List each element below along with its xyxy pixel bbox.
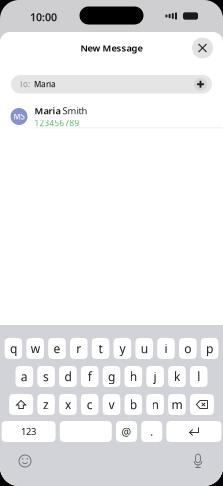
- button[interactable]: m: [168, 394, 186, 415]
- staticText: m: [171, 396, 182, 412]
- staticText: Smith: [60, 104, 87, 117]
- staticText: k: [174, 368, 180, 384]
- button[interactable]: r: [70, 338, 88, 359]
- button[interactable]: x: [59, 394, 77, 415]
- staticText: e: [53, 340, 60, 356]
- button[interactable]: 123: [2, 421, 56, 442]
- staticText: Maria: [34, 79, 56, 89]
- button[interactable]: .: [141, 421, 162, 442]
- button[interactable]: b: [124, 394, 142, 415]
- staticText: 10:00: [30, 10, 57, 24]
- staticText: n: [152, 396, 159, 412]
- staticText: g: [108, 368, 115, 384]
- button[interactable]: [190, 394, 214, 415]
- button[interactable]: g: [103, 366, 120, 387]
- button[interactable]: i: [157, 338, 175, 359]
- button[interactable]: u: [135, 338, 153, 359]
- staticText: New Message: [80, 42, 142, 54]
- staticText: a: [21, 368, 28, 384]
- button[interactable]: h: [124, 366, 142, 387]
- staticText: To:: [19, 79, 30, 89]
- button[interactable]: n: [146, 394, 164, 415]
- button[interactable]: e: [48, 338, 66, 359]
- staticText: r: [76, 340, 81, 356]
- button[interactable]: j: [146, 366, 164, 387]
- button[interactable]: [9, 394, 33, 415]
- staticText: t: [99, 340, 103, 356]
- staticText: p: [206, 340, 213, 356]
- staticText: s: [43, 368, 49, 384]
- button[interactable]: v: [103, 394, 120, 415]
- button[interactable]: t: [92, 338, 109, 359]
- staticText: f: [88, 368, 92, 384]
- staticText: x: [65, 396, 71, 412]
- button[interactable]: k: [168, 366, 186, 387]
- staticText: h: [130, 368, 137, 384]
- staticText: d: [64, 368, 71, 384]
- button[interactable]: p: [201, 338, 218, 359]
- button[interactable]: w: [26, 338, 44, 359]
- staticText: q: [10, 340, 17, 356]
- staticText: i: [164, 340, 167, 356]
- button[interactable]: c: [81, 394, 98, 415]
- staticText: b: [130, 396, 137, 412]
- button[interactable]: a: [15, 366, 33, 387]
- button[interactable]: Close: [192, 37, 213, 58]
- button[interactable]: @: [116, 421, 137, 442]
- button[interactable]: Add contact: [194, 78, 207, 91]
- button[interactable]: o: [179, 338, 197, 359]
- button[interactable]: [166, 421, 221, 442]
- staticText: w: [31, 340, 40, 356]
- staticText: l: [197, 368, 200, 384]
- button[interactable]: f: [81, 366, 98, 387]
- button[interactable]: q: [5, 338, 22, 359]
- button[interactable]: l: [190, 366, 207, 387]
- button[interactable]: Dictate: [185, 449, 211, 473]
- staticText: j: [154, 368, 157, 384]
- staticText: 123456789: [34, 118, 79, 128]
- staticText: .: [150, 424, 153, 439]
- staticText: @: [121, 424, 131, 439]
- button[interactable]: Emoji: [12, 449, 38, 473]
- button[interactable]: [60, 421, 112, 442]
- button[interactable]: MS: [0, 105, 223, 128]
- button[interactable]: y: [114, 338, 131, 359]
- staticText: 123: [21, 425, 36, 438]
- staticText: MS: [13, 111, 24, 122]
- staticText: y: [119, 340, 125, 356]
- staticText: v: [108, 396, 114, 412]
- staticText: z: [43, 396, 49, 412]
- staticText: Maria: [34, 104, 60, 117]
- staticText: c: [87, 396, 93, 412]
- button[interactable]: d: [59, 366, 77, 387]
- staticText: u: [141, 340, 148, 356]
- button[interactable]: z: [37, 394, 55, 415]
- staticText: o: [184, 340, 191, 356]
- button[interactable]: s: [37, 366, 55, 387]
